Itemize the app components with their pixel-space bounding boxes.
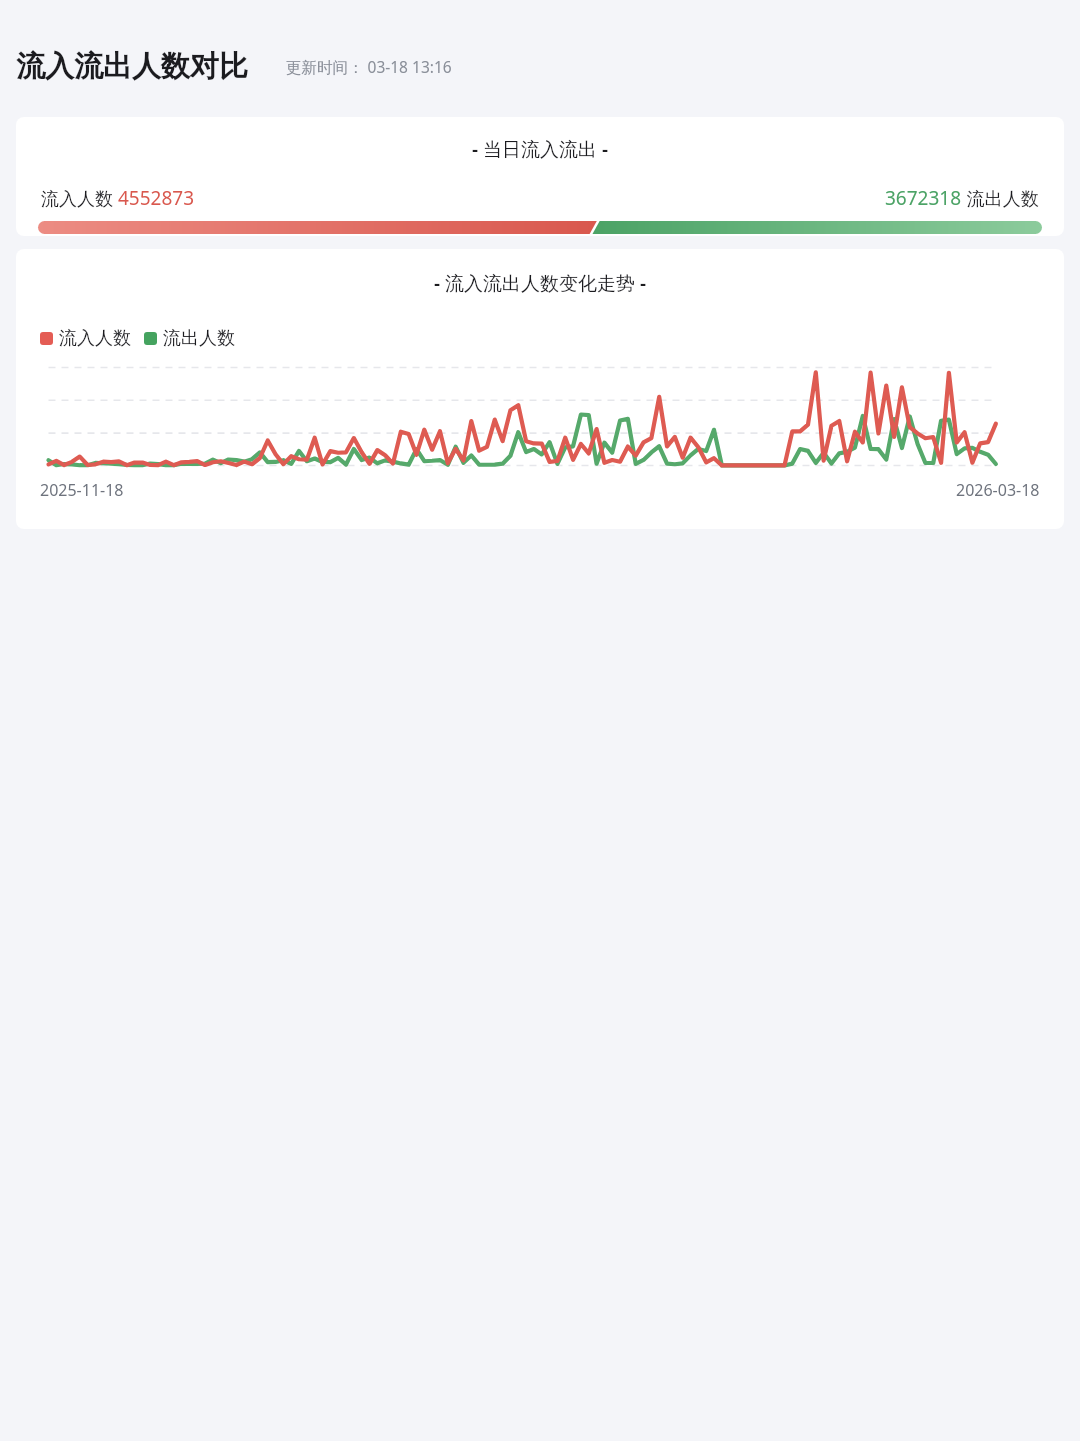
staticText: 2026-03-18 [956,479,1040,501]
staticText: 流出人数 [962,186,1039,211]
staticText: - 当日流入流出 - [472,136,609,162]
button[interactable]: 流出人数 [144,327,235,350]
staticText: 4552873 [118,185,195,211]
staticText: 流入流出人数对比 [16,48,248,85]
staticText: 更新时间： 03-18 13:16 [286,56,452,77]
button[interactable]: 流入人数 [40,327,131,350]
staticText: - 流入流出人数变化走势 - [434,270,647,296]
staticText: 流入人数 [41,186,118,211]
staticText: 流入人数 [59,327,131,350]
staticText: 流出人数 [163,327,235,350]
button[interactable]: - 流入流出人数变化走势 - [16,249,1064,529]
staticText: 2025-11-18 [40,479,124,501]
staticText: 3672318 [885,185,962,211]
button[interactable]: - 当日流入流出 - [16,117,1064,236]
